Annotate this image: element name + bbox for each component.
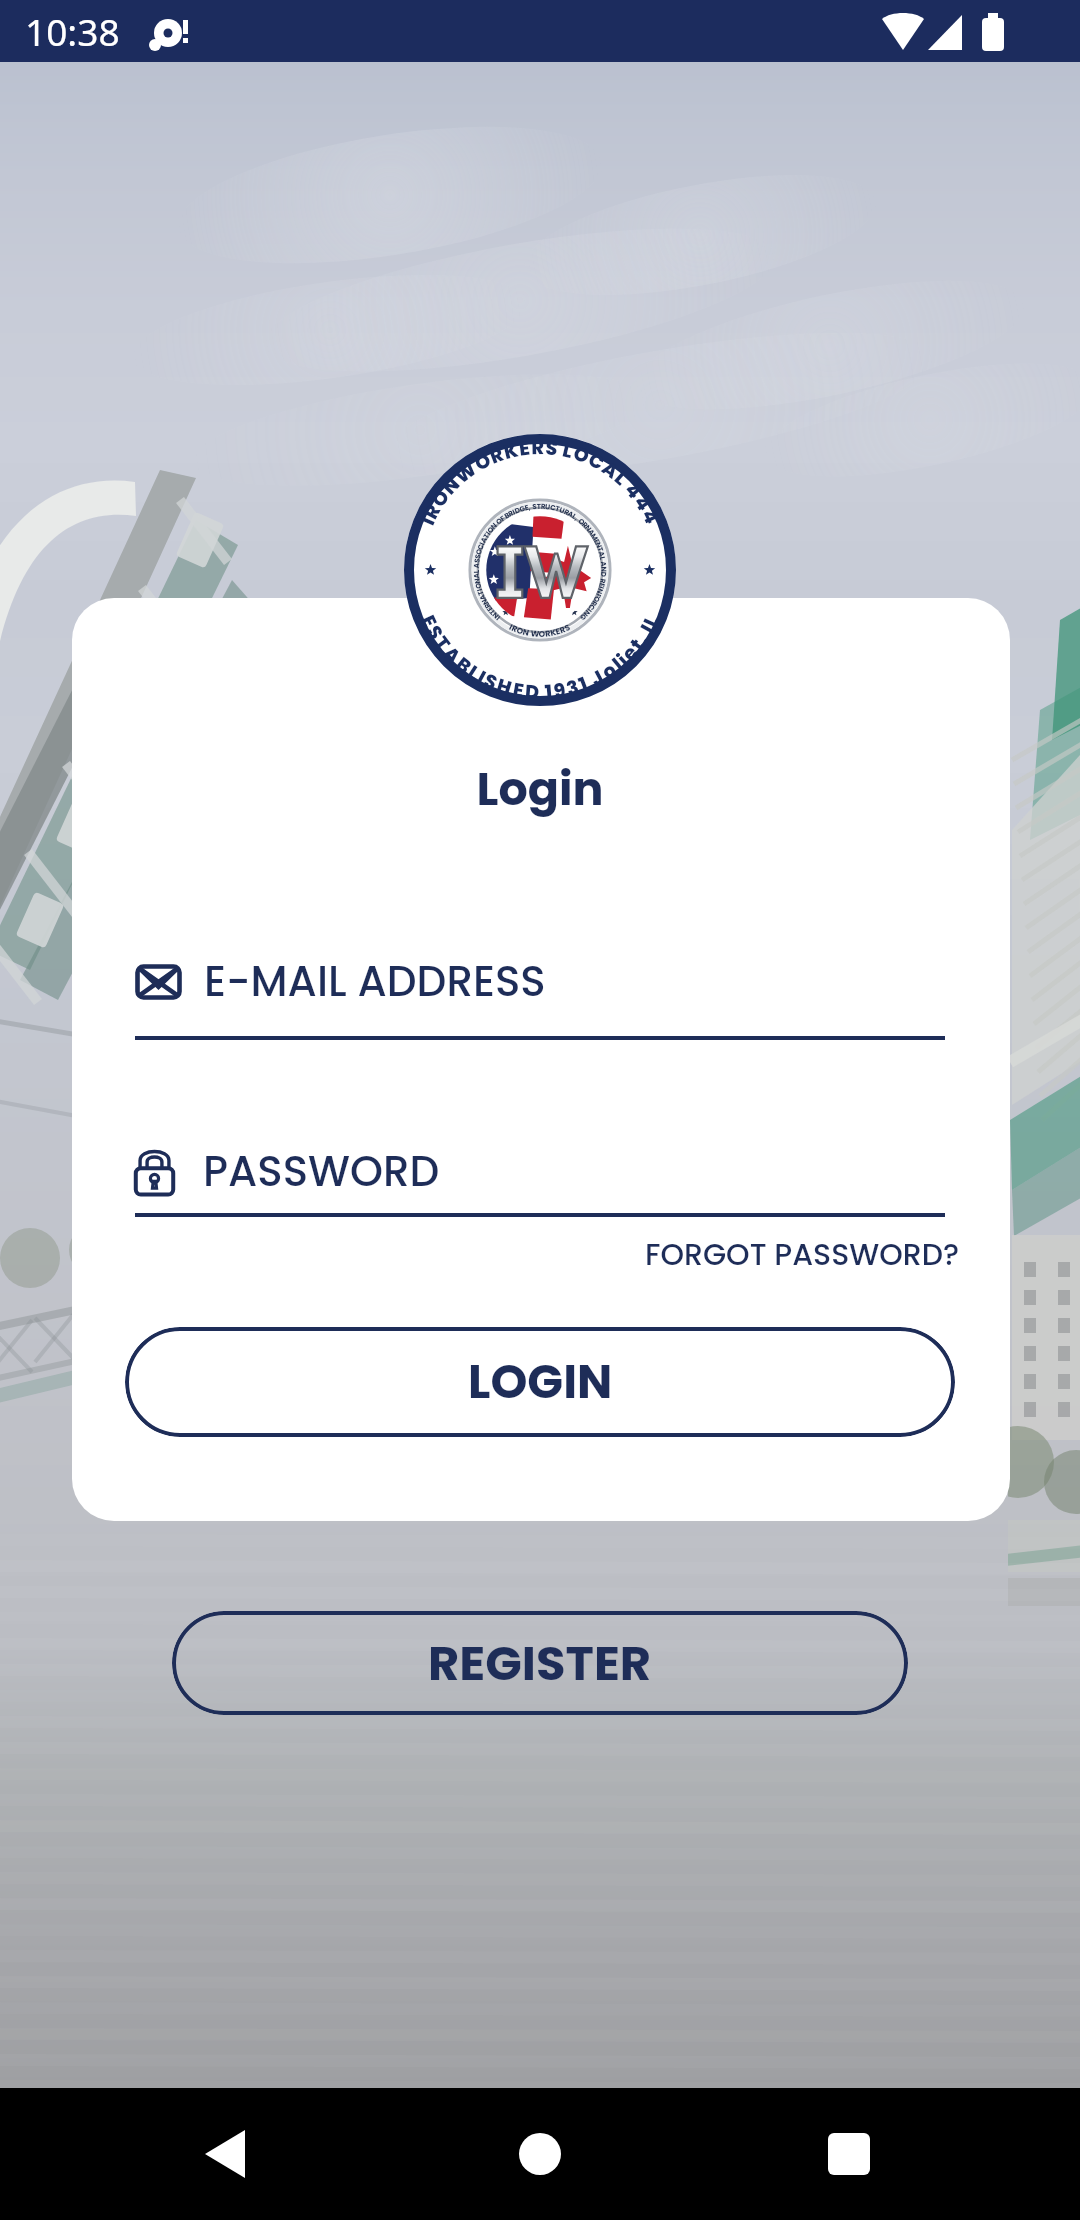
staticText: LOGIN xyxy=(468,1349,613,1415)
staticText: REGISTER xyxy=(428,1630,652,1697)
button[interactable]: Recent apps xyxy=(769,2088,929,2220)
staticText: 10:38 xyxy=(25,6,120,56)
staticText: FORGOT PASSWORD? xyxy=(645,1234,960,1276)
staticText: PASSWORD xyxy=(203,1142,440,1201)
staticText: E-MAIL ADDRESS xyxy=(204,952,546,1011)
staticText: Login xyxy=(0,757,1080,821)
button[interactable]: Home xyxy=(460,2088,620,2220)
button[interactable]: Back xyxy=(145,2088,305,2220)
button[interactable]: REGISTER xyxy=(172,1611,908,1715)
button[interactable]: LOGIN xyxy=(125,1327,955,1437)
button[interactable]: E-MAIL ADDRESS xyxy=(135,952,945,1040)
button[interactable]: PASSWORD xyxy=(135,1142,945,1217)
button[interactable]: FORGOT PASSWORD? xyxy=(600,1230,960,1280)
